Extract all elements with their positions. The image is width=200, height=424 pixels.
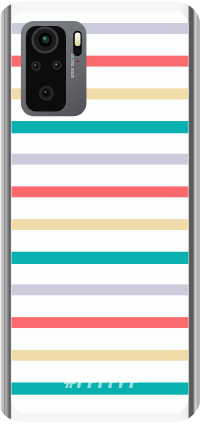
staticText: ULTRA WIDE [70, 54, 75, 79]
staticText: #FFFFFF [64, 368, 140, 394]
button[interactable]: Phone case preview [0, 0, 200, 424]
